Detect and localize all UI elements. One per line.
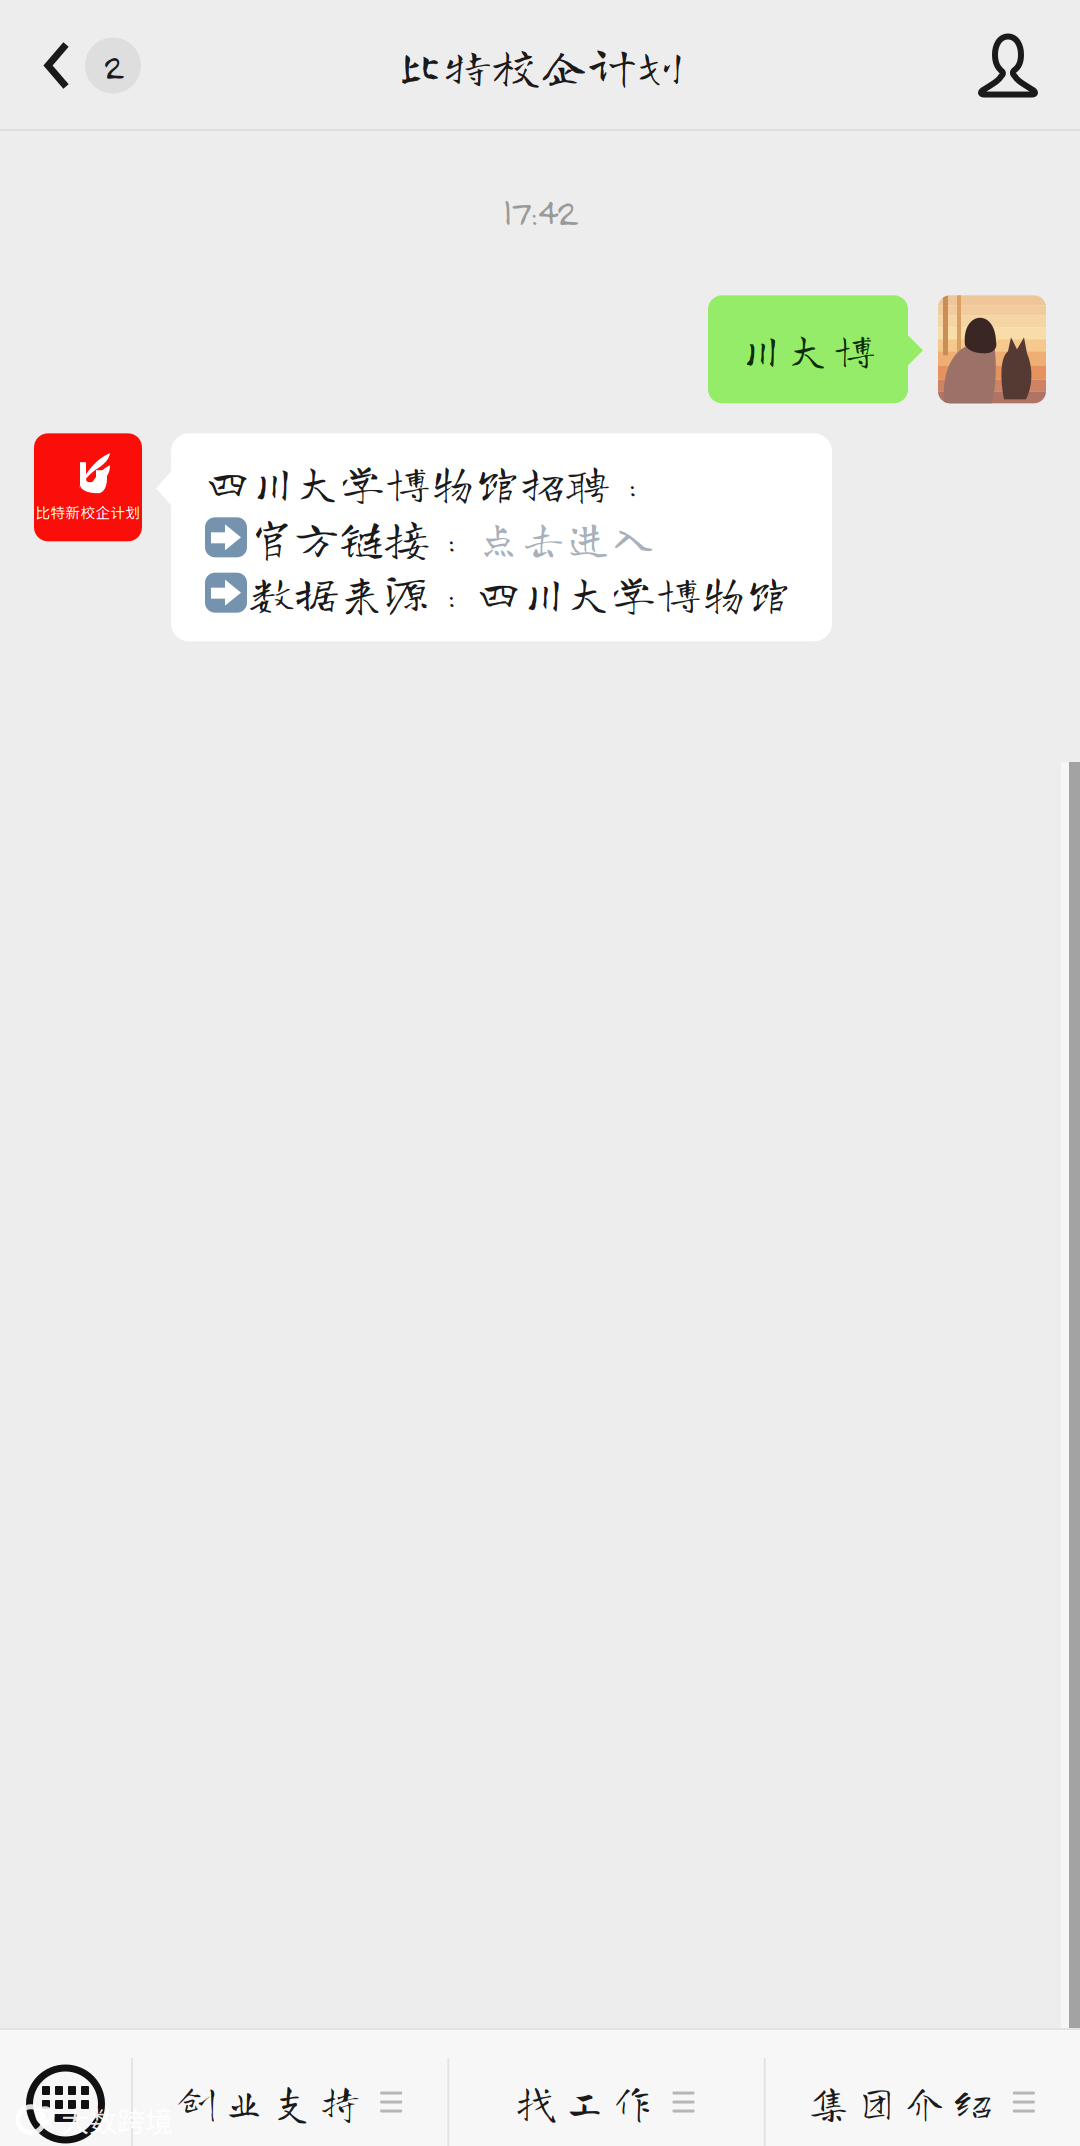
staticText: 找工作 [516, 2082, 652, 2122]
staticText: 集团介绍 [809, 2082, 993, 2122]
button[interactable]: 创业支持 [131, 2028, 447, 2146]
button[interactable]: Keyboard [0, 2028, 131, 2146]
button[interactable]: Back [0, 19, 141, 111]
staticText: 2 [103, 44, 123, 87]
staticText: 比特校企计划 [396, 41, 684, 89]
button[interactable]: Contact info [980, 14, 1080, 116]
staticText: 大数跨境 [61, 2099, 173, 2140]
staticText: 四川大学博物馆招聘： [205, 459, 655, 505]
staticText: 数据来源： [249, 570, 474, 615]
staticText: 比特新校企计划 [35, 501, 140, 522]
staticText: 点击进入 [476, 515, 656, 560]
button[interactable]: 集团介绍 [764, 2028, 1080, 2146]
staticText: 四川大学博物馆 [476, 570, 791, 615]
staticText: 官方链接： [249, 515, 474, 560]
staticText: 川大博 [739, 328, 876, 371]
button[interactable]: 比特新校企计划头像 [34, 433, 142, 541]
button[interactable]: 我的头像 [938, 295, 1046, 403]
button[interactable]: 四川大学博物馆招聘： [142, 433, 832, 641]
button[interactable]: 川大博 [708, 295, 923, 403]
staticText: 17:42 [503, 188, 577, 233]
button[interactable]: 找工作 [447, 2028, 764, 2146]
staticText: 创业支持 [176, 2082, 360, 2122]
